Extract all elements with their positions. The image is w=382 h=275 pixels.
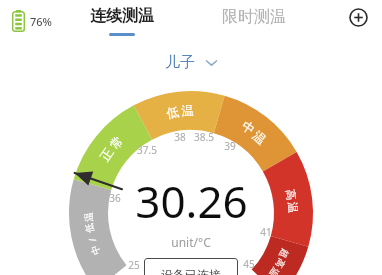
button[interactable]: 儿子 — [165, 53, 217, 72]
staticText: 温 — [249, 128, 269, 148]
staticText: 温 — [267, 266, 282, 275]
button[interactable]: Battery 76 percent — [12, 10, 52, 32]
button[interactable]: 限时测温 — [222, 7, 286, 27]
staticText: 低 — [165, 104, 180, 122]
staticText: 高 — [273, 257, 287, 270]
staticText: 常 — [107, 133, 127, 153]
button[interactable]: 连续测温 — [90, 6, 154, 36]
staticText: 正 — [97, 145, 117, 165]
staticText: 温 — [83, 212, 95, 222]
staticText: 温 — [286, 202, 300, 213]
staticText: unit/°C — [171, 234, 211, 250]
staticText: 中 — [88, 243, 103, 257]
staticText: 36 — [109, 191, 121, 205]
staticText: 30.26 — [135, 171, 248, 231]
staticText: 38.5 — [194, 130, 214, 144]
staticText: 37.5 — [137, 143, 157, 157]
staticText: 限时测温 — [222, 7, 286, 27]
staticText: 儿子 — [165, 53, 195, 72]
staticText: 39 — [224, 139, 236, 153]
button[interactable]: 设备已连接 — [144, 258, 238, 275]
staticText: 超 — [278, 247, 291, 260]
staticText: 设备已连接 — [161, 267, 221, 275]
staticText: 中 — [238, 118, 258, 138]
staticText: 25 — [128, 258, 140, 272]
staticText: 连续测温 — [90, 6, 154, 26]
staticText: / — [86, 236, 99, 244]
button[interactable]: Add device — [343, 2, 373, 32]
staticText: 低 — [83, 222, 97, 234]
staticText: 38 — [174, 130, 186, 144]
staticText: 45 — [243, 257, 255, 271]
staticText: 温 — [181, 103, 194, 119]
staticText: 76% — [30, 14, 52, 29]
staticText: 41 — [260, 225, 272, 239]
staticText: 高 — [283, 188, 299, 201]
